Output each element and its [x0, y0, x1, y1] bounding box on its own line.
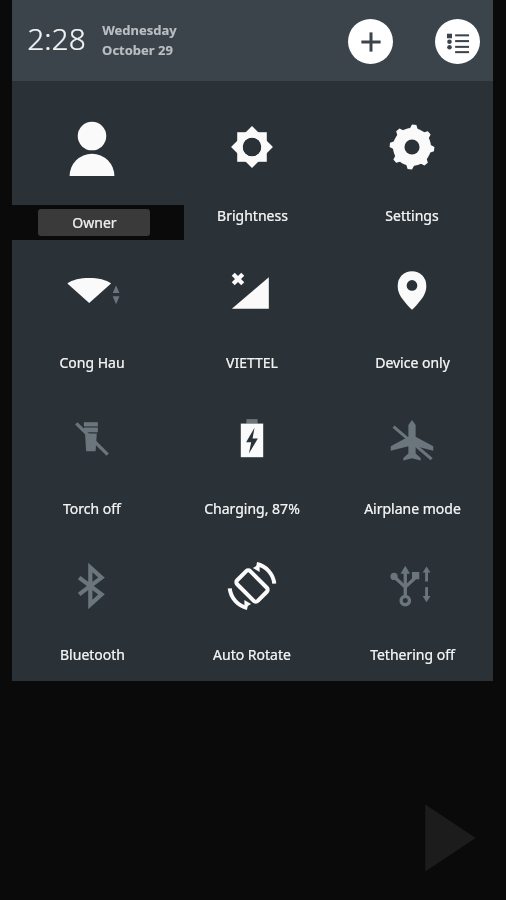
- button[interactable]: Wednesday: [102, 21, 177, 59]
- button[interactable]: [174, 397, 330, 501]
- staticText: Torch off: [63, 499, 121, 518]
- button[interactable]: [334, 251, 490, 355]
- staticText: Tethering off: [370, 645, 455, 664]
- staticText: Device only: [375, 353, 450, 372]
- button[interactable]: Play: [420, 800, 478, 876]
- staticText: Auto Rotate: [213, 645, 291, 664]
- button[interactable]: [334, 544, 490, 648]
- button[interactable]: [14, 544, 170, 648]
- staticText: 2:28: [27, 18, 86, 59]
- staticText: Cong Hau: [59, 353, 125, 372]
- staticText: Brightness: [217, 206, 288, 225]
- button[interactable]: [174, 251, 330, 355]
- button[interactable]: [174, 105, 330, 209]
- staticText: Wednesday: [102, 21, 177, 39]
- staticText: VIETTEL: [226, 353, 278, 372]
- button[interactable]: Quick settings list: [435, 19, 480, 64]
- button[interactable]: [14, 397, 170, 501]
- button[interactable]: Owner: [14, 105, 170, 209]
- button[interactable]: [174, 544, 330, 648]
- button[interactable]: 2:28: [25, 18, 88, 59]
- button[interactable]: [14, 251, 170, 355]
- button[interactable]: Owner: [38, 209, 150, 236]
- staticText: Owner: [72, 213, 117, 232]
- button[interactable]: [334, 397, 490, 501]
- staticText: Charging, 87%: [204, 499, 300, 518]
- staticText: Settings: [385, 206, 439, 225]
- button[interactable]: Add user: [348, 19, 393, 64]
- button[interactable]: [334, 105, 490, 209]
- staticText: October 29: [102, 41, 173, 59]
- staticText: Bluetooth: [60, 645, 125, 664]
- staticText: Airplane mode: [364, 499, 461, 518]
